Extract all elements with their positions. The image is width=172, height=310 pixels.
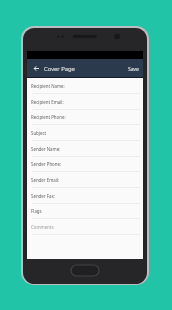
staticText: Flags bbox=[31, 208, 42, 214]
button[interactable]: Recipient Phone: bbox=[27, 109, 143, 125]
button[interactable]: Sender Fax: bbox=[27, 188, 143, 204]
button[interactable]: Sender Phone: bbox=[27, 156, 143, 172]
button[interactable]: Flags bbox=[27, 203, 143, 219]
staticText: Sender Phone: bbox=[31, 161, 62, 167]
button[interactable]: Recipient Name: bbox=[27, 78, 143, 94]
staticText: Comments bbox=[31, 224, 54, 230]
button[interactable]: Recipient Email: bbox=[27, 94, 143, 110]
button[interactable]: Comments bbox=[27, 219, 143, 235]
staticText: Sender Name: bbox=[31, 146, 61, 152]
button[interactable]: Back bbox=[27, 59, 44, 78]
button[interactable]: Sender Email: bbox=[27, 172, 143, 188]
button[interactable]: Save bbox=[123, 59, 143, 78]
button[interactable]: Sender Name: bbox=[27, 141, 143, 157]
staticText: Sender Fax: bbox=[31, 193, 55, 199]
staticText: Recipient Email: bbox=[31, 99, 64, 105]
button[interactable]: Subject bbox=[27, 125, 143, 141]
staticText: Recipient Name: bbox=[31, 83, 65, 89]
staticText: Sender Email: bbox=[31, 177, 60, 183]
staticText: Subject bbox=[31, 130, 47, 136]
staticText: Cover Page bbox=[44, 65, 75, 73]
staticText: Recipient Phone: bbox=[31, 114, 66, 120]
staticText: Save bbox=[128, 65, 139, 72]
